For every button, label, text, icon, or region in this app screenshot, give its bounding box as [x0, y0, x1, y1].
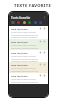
- button[interactable]: Favorite: [43, 63, 46, 66]
- staticText: Lorem ipsum dolor sit amet, consectetur …: [11, 44, 39, 50]
- button[interactable]: Color filter: [17, 21, 20, 24]
- button[interactable]: Title text here: [9, 39, 48, 50]
- staticText: Lorem ipsum dolor sit amet, consectetur …: [11, 31, 39, 39]
- staticText: Lorem ipsum dolor sit amet, consectetur …: [11, 78, 39, 84]
- button[interactable]: Pin: [39, 40, 42, 43]
- staticText: Lorem ipsum dolor sit amet, consectetur …: [11, 55, 39, 62]
- staticText: Title text here: [11, 40, 28, 43]
- button[interactable]: More options: [43, 16, 46, 19]
- staticText: Texts favorite: [11, 16, 31, 20]
- staticText: Lorem ipsum dolor sit amet, consectetur …: [11, 67, 39, 73]
- button[interactable]: Title text here: [9, 26, 48, 39]
- staticText: Title text here: [11, 27, 28, 30]
- staticText: Title text here: [11, 74, 28, 77]
- button[interactable]: Color filter: [28, 21, 31, 24]
- button[interactable]: Pin: [39, 63, 42, 66]
- button[interactable]: Pin: [39, 51, 42, 54]
- button[interactable]: Color filter: [39, 21, 42, 24]
- button[interactable]: Favorite: [43, 27, 46, 30]
- button[interactable]: Pin: [39, 74, 42, 77]
- staticText: Title text here: [11, 63, 28, 66]
- button[interactable]: Color filter: [34, 21, 37, 24]
- button[interactable]: Title text here: [9, 50, 48, 62]
- button[interactable]: Title text here: [9, 62, 48, 73]
- button[interactable]: Color filter: [23, 21, 26, 24]
- button[interactable]: Favorite: [43, 40, 46, 43]
- button[interactable]: All colors: [11, 21, 15, 24]
- staticText: Title text here: [11, 51, 28, 54]
- button[interactable]: Pin: [39, 27, 42, 30]
- staticText: TEXTE FAVORITE: [14, 3, 51, 9]
- button[interactable]: Favorite: [43, 74, 46, 77]
- button[interactable]: Favorite: [43, 51, 46, 54]
- button[interactable]: Title text here: [9, 73, 48, 84]
